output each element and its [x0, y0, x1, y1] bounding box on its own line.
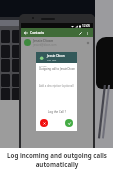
staticText: Jessie Dixon	[33, 38, 54, 43]
staticText: Contacts	[30, 30, 45, 35]
staticText: CALLEE	[39, 65, 47, 68]
staticText: 12:05	[82, 24, 91, 28]
staticText: Add a description (optional)	[39, 84, 74, 88]
button[interactable]: Edit	[76, 29, 84, 37]
staticText: Log incoming and outgoing calls automati…	[7, 151, 107, 169]
other: Favourite	[86, 41, 90, 45]
staticText: +91 784	[47, 58, 57, 61]
staticText: Jessie Dixon	[47, 54, 65, 58]
other: Call	[39, 55, 45, 61]
staticText: jessied@dixon.com	[33, 43, 57, 47]
staticText: Log the Call ?	[48, 110, 66, 114]
button[interactable]: Jessie Dixon	[21, 37, 93, 48]
staticText: Outgoing call to Jessie Dixon	[39, 67, 75, 71]
button[interactable]: Cancel	[40, 119, 48, 127]
button[interactable]: Back	[21, 28, 30, 37]
button[interactable]: Confirm	[65, 119, 73, 127]
button[interactable]: More options	[84, 30, 91, 37]
